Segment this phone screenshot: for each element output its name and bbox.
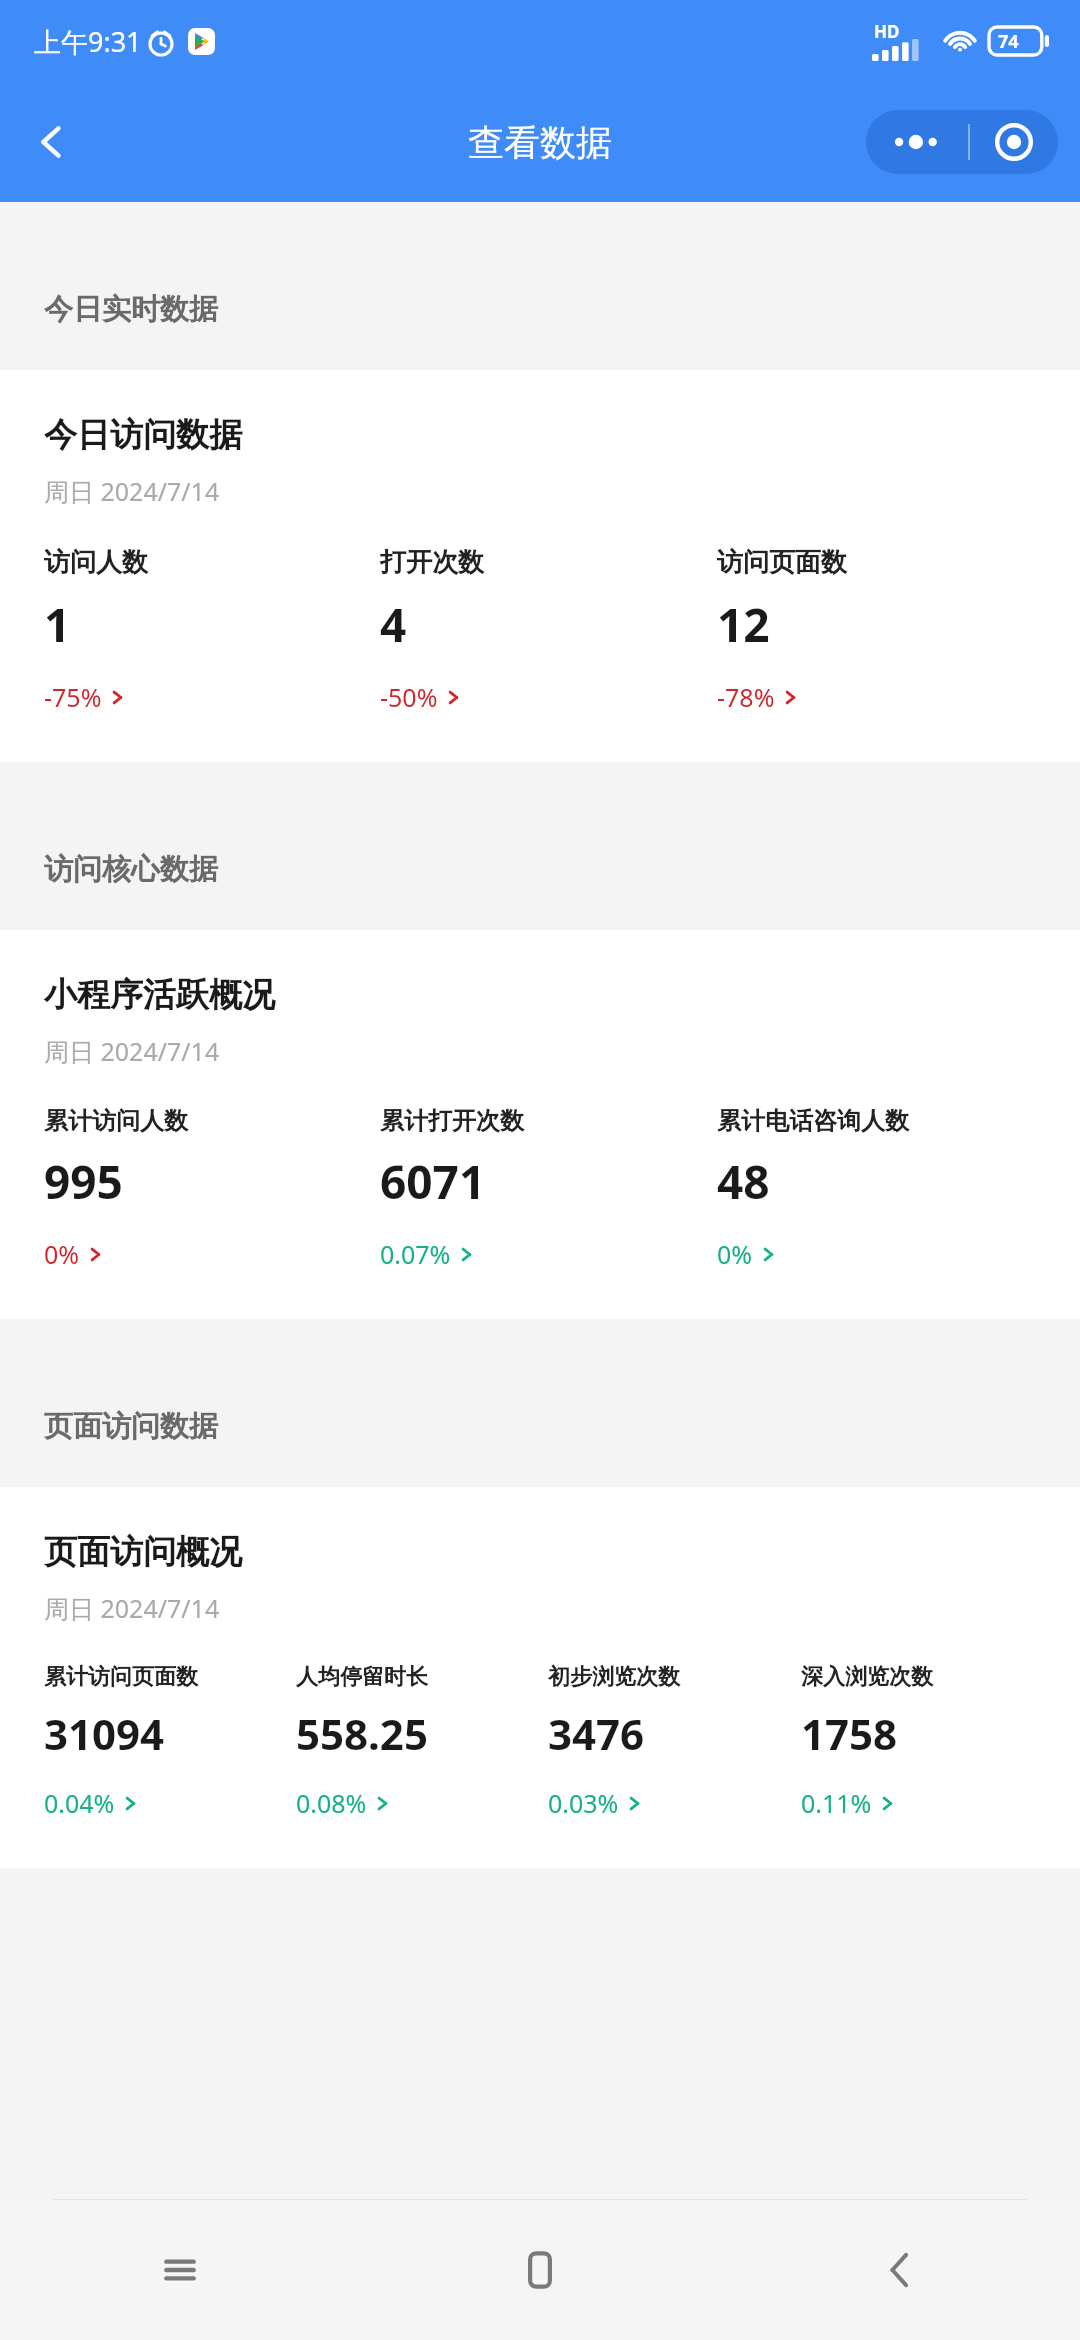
staticText: 6071 — [380, 1150, 486, 1213]
staticText: 995 — [44, 1150, 123, 1213]
staticText: 12 — [717, 593, 770, 656]
button[interactable]: 今日访问数据 — [0, 370, 1080, 762]
staticText: 3476 — [548, 1705, 645, 1762]
staticText: 访问页面数 — [717, 546, 847, 579]
staticText: 深入浏览次数 — [801, 1663, 933, 1691]
button[interactable]: 页面访问概况 — [0, 1487, 1080, 1868]
staticText: 4 — [380, 593, 407, 656]
staticText: HD — [874, 20, 900, 43]
staticText: 0% — [717, 1237, 753, 1271]
staticText: 0.04% — [44, 1786, 115, 1820]
button[interactable]: 返回 — [720, 2200, 1080, 2340]
button[interactable]: 累计访问人数 — [44, 1106, 380, 1271]
staticText: 访问人数 — [44, 546, 148, 579]
staticText: 周日 2024/7/14 — [44, 1591, 220, 1625]
button[interactable]: 访问页面数 — [717, 546, 1054, 714]
staticText: 74 — [998, 29, 1019, 54]
button[interactable]: 累计电话咨询人数 — [717, 1106, 1054, 1271]
staticText: -50% — [380, 680, 438, 714]
staticText: 0.11% — [801, 1786, 872, 1820]
button[interactable]: 打开次数 — [380, 546, 717, 714]
staticText: 1 — [44, 593, 71, 656]
staticText: 31094 — [44, 1705, 165, 1762]
staticText: 页面访问概况 — [44, 1531, 242, 1573]
button[interactable]: 累计访问页面数 — [44, 1663, 296, 1820]
staticText: 页面访问数据 — [44, 1408, 218, 1445]
button[interactable]: 深入浏览次数 — [801, 1663, 1054, 1820]
staticText: 累计访问页面数 — [44, 1663, 198, 1691]
staticText: 累计访问人数 — [44, 1106, 188, 1136]
staticText: 558.25 — [296, 1705, 428, 1762]
staticText: 1758 — [801, 1705, 898, 1762]
staticText: 0% — [44, 1237, 80, 1271]
staticText: 累计打开次数 — [380, 1106, 524, 1136]
staticText: 小程序活跃概况 — [44, 974, 275, 1016]
button[interactable]: 累计打开次数 — [380, 1106, 717, 1271]
button[interactable]: 最近任务 — [0, 2200, 360, 2340]
staticText: 初步浏览次数 — [548, 1663, 680, 1691]
staticText: 周日 2024/7/14 — [44, 474, 220, 508]
button[interactable]: 更多与胶囊菜单 — [866, 110, 1058, 174]
button[interactable]: 主页 — [360, 2200, 720, 2340]
staticText: 打开次数 — [380, 546, 484, 579]
button[interactable]: 返回 — [20, 110, 84, 174]
staticText: 0.07% — [380, 1237, 451, 1271]
staticText: 上午9:31 — [34, 23, 142, 60]
staticText: 周日 2024/7/14 — [44, 1034, 220, 1068]
staticText: 人均停留时长 — [296, 1663, 428, 1691]
staticText: 查看数据 — [468, 120, 612, 165]
button[interactable]: 访问人数 — [44, 546, 380, 714]
staticText: 访问核心数据 — [44, 851, 218, 888]
staticText: 0.03% — [548, 1786, 619, 1820]
button[interactable]: 小程序活跃概况 — [0, 930, 1080, 1319]
button[interactable]: 人均停留时长 — [296, 1663, 548, 1820]
staticText: -78% — [717, 680, 775, 714]
staticText: 0.08% — [296, 1786, 367, 1820]
staticText: 累计电话咨询人数 — [717, 1106, 909, 1136]
staticText: 48 — [717, 1150, 770, 1213]
button[interactable]: 初步浏览次数 — [548, 1663, 801, 1820]
staticText: 今日访问数据 — [44, 414, 242, 456]
staticText: 今日实时数据 — [44, 291, 218, 328]
staticText: -75% — [44, 680, 102, 714]
